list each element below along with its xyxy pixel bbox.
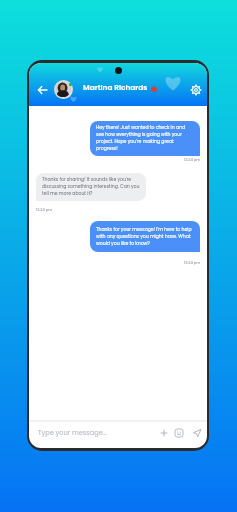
staticText: Type your message... [38,428,107,437]
staticText: 12:24 pm [184,157,201,162]
button[interactable]: Add attachment [157,426,171,440]
staticText: Hey there! Just wanted to check in and s… [96,124,194,152]
button[interactable]: Back [34,82,50,98]
staticText: 12:24 pm [36,207,53,212]
staticText: Thanks for sharing! It sounds like you'r… [42,176,140,197]
button[interactable]: Emoji [172,426,186,440]
staticText: Thanks for your message! I'm here to hel… [96,226,194,247]
button[interactable]: Send [190,426,204,440]
button[interactable]: Settings [188,82,204,98]
staticText: Martina Richards [83,82,148,93]
staticText: 12:24 pm [184,260,201,265]
